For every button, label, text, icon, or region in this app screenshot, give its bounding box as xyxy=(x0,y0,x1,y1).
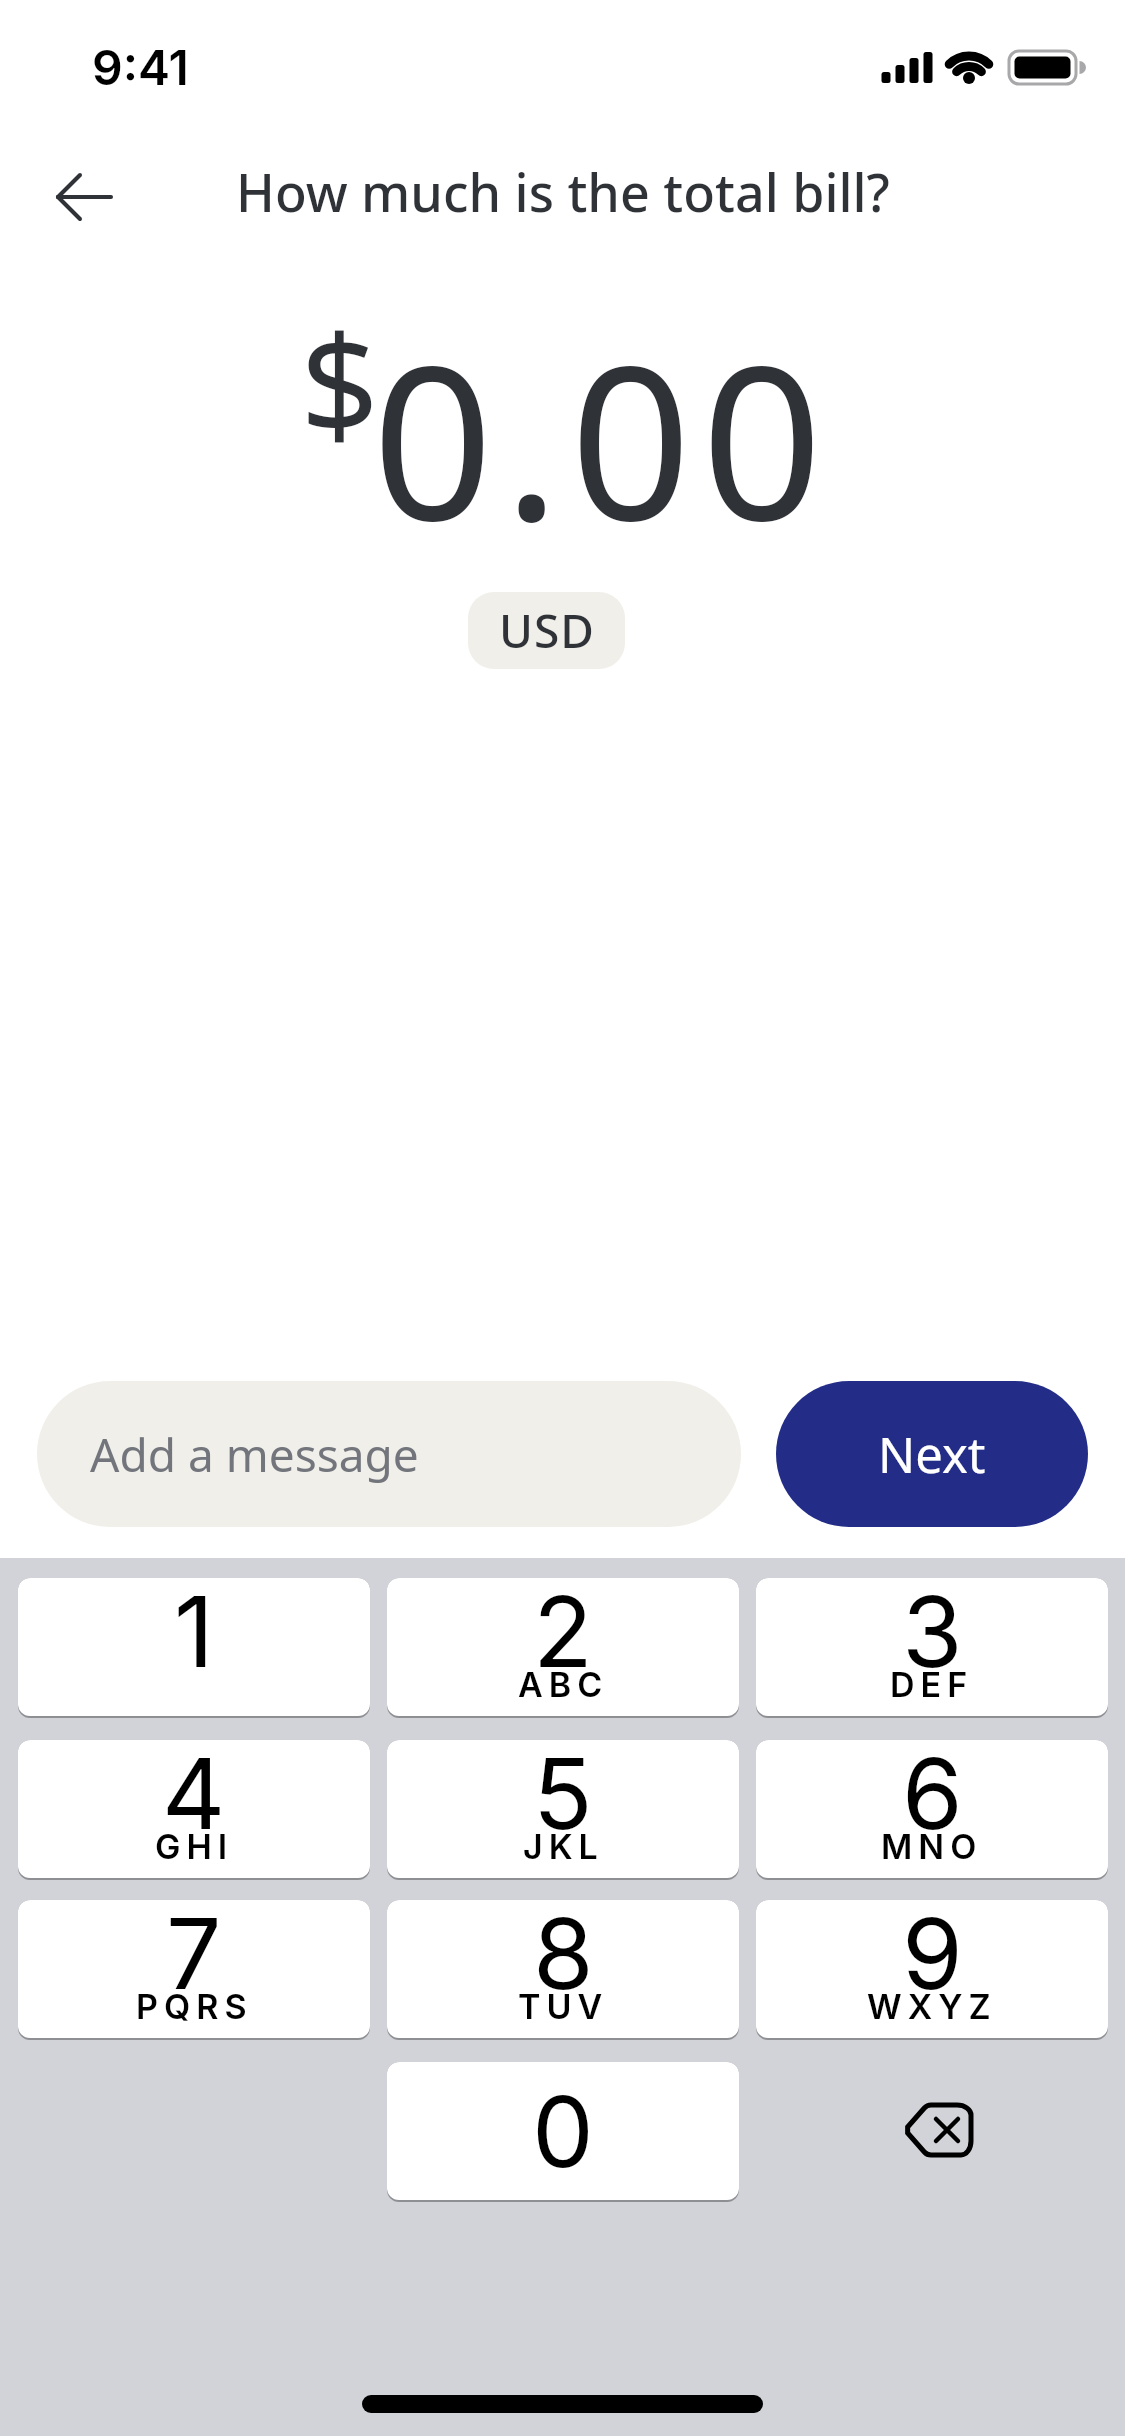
button[interactable]: 2 xyxy=(387,1578,739,1716)
staticText: DEF xyxy=(890,1664,974,1705)
button[interactable]: 5 xyxy=(387,1740,739,1878)
staticText: 1 xyxy=(174,1578,214,1691)
staticText: JKL xyxy=(523,1826,604,1867)
button[interactable] xyxy=(40,160,130,236)
staticText: GHI xyxy=(155,1826,234,1867)
staticText: Next xyxy=(878,1421,986,1488)
button[interactable]: 8 xyxy=(387,1900,739,2038)
button[interactable]: 1 xyxy=(18,1578,370,1716)
button[interactable] xyxy=(886,2092,996,2168)
staticText: TUV xyxy=(518,1986,609,2027)
button[interactable]: Add a message xyxy=(37,1381,741,1527)
staticText: 4 xyxy=(162,1740,226,1853)
staticText: 0 xyxy=(532,2072,594,2191)
staticText: 5 xyxy=(533,1740,593,1853)
staticText: 9 xyxy=(902,1900,963,2013)
button[interactable]: 9 xyxy=(756,1900,1108,2038)
staticText: WXYZ xyxy=(867,1986,997,2027)
staticText: 2 xyxy=(533,1578,593,1691)
staticText: Add a message xyxy=(90,1423,419,1486)
staticText: 6 xyxy=(902,1740,963,1853)
staticText: 9:41 xyxy=(92,38,189,96)
button[interactable]: 3 xyxy=(756,1578,1108,1716)
staticText: $ xyxy=(300,287,379,475)
staticText: How much is the total bill? xyxy=(236,156,890,227)
button[interactable]: 7 xyxy=(18,1900,370,2038)
staticText: ABC xyxy=(518,1664,609,1705)
button[interactable]: 0 xyxy=(387,2062,739,2200)
button[interactable]: Next xyxy=(776,1381,1088,1527)
staticText: MNO xyxy=(881,1826,983,1867)
staticText: PQRS xyxy=(136,1986,253,2027)
staticText: 8 xyxy=(533,1900,594,2013)
button[interactable]: USD xyxy=(468,592,625,669)
staticText: 3 xyxy=(902,1578,963,1691)
staticText: 0.00 xyxy=(372,293,833,582)
button[interactable]: 6 xyxy=(756,1740,1108,1878)
staticText: 7 xyxy=(166,1900,222,2013)
button[interactable]: 4 xyxy=(18,1740,370,1878)
staticText: USD xyxy=(499,599,595,662)
